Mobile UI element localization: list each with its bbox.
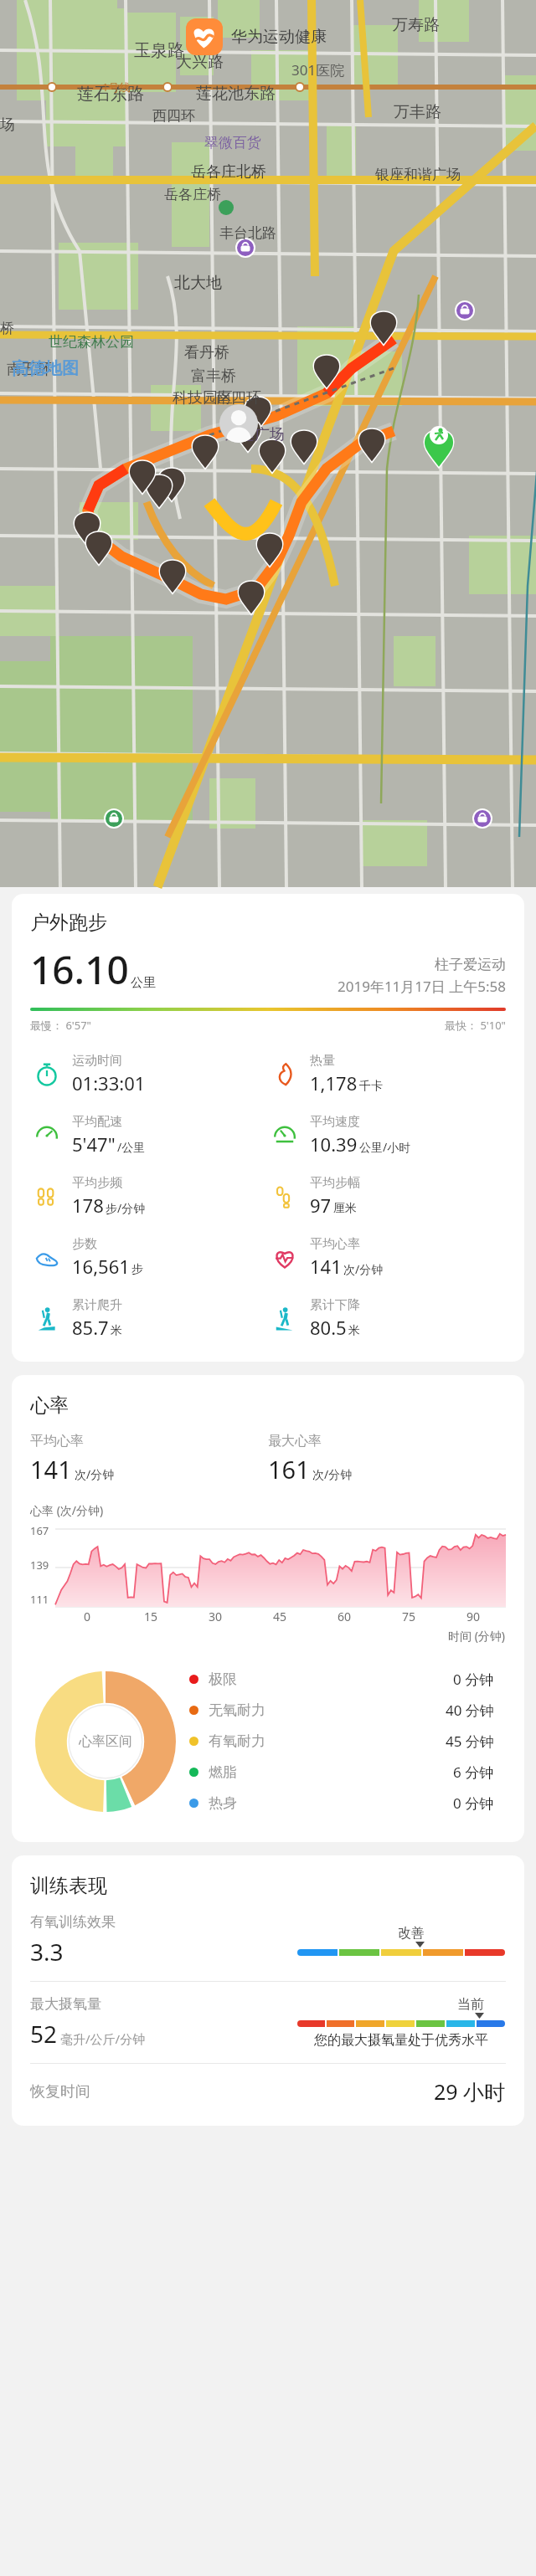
staticText: 莲石东路 xyxy=(77,84,144,105)
staticText: 45 分钟 xyxy=(446,1732,494,1751)
staticText: 40 分钟 xyxy=(446,1701,494,1720)
staticText: 南四环 xyxy=(216,388,261,408)
button[interactable]: 平均步幅 xyxy=(268,1175,506,1218)
staticText: 111 xyxy=(30,1592,49,1607)
staticText: 16,561 xyxy=(72,1254,130,1279)
button[interactable]: 有氧耐力 xyxy=(189,1726,506,1757)
staticText: 1,178 xyxy=(310,1070,358,1096)
staticText: 步/分钟 xyxy=(106,1200,146,1216)
button[interactable]: 有氧训练效果 xyxy=(30,1913,506,1968)
staticText: 岳各庄桥 xyxy=(164,186,221,203)
staticText: 热量 xyxy=(310,1053,335,1069)
staticText: 富丰桥 xyxy=(191,367,236,386)
button[interactable]: 平均心率 xyxy=(268,1236,506,1279)
staticText: 科技园区 xyxy=(173,388,233,408)
button[interactable]: 华为运动健康 xyxy=(186,18,327,55)
staticText: 米 xyxy=(111,1323,122,1338)
staticText: 万寿路 xyxy=(392,15,440,35)
staticText: 万丰路 xyxy=(394,102,441,122)
staticText: 6 分钟 xyxy=(453,1763,494,1782)
button[interactable]: 恢复时间 xyxy=(30,2077,506,2106)
staticText: 97 xyxy=(310,1193,332,1218)
button[interactable]: 热身 xyxy=(189,1788,506,1819)
staticText: 世纪森林公园 xyxy=(49,333,134,351)
button[interactable]: 最大心率 xyxy=(268,1433,506,1486)
staticText: 45 xyxy=(273,1609,287,1624)
staticText: 时间 (分钟) xyxy=(448,1628,506,1644)
staticText: 极限 xyxy=(209,1670,237,1688)
staticText: 看丹桥 xyxy=(184,343,229,362)
staticText: 301医院 xyxy=(291,60,345,80)
staticText: 心率 xyxy=(30,1393,69,1418)
staticText: 85.7 xyxy=(72,1315,109,1340)
staticText: /公里 xyxy=(117,1139,146,1155)
staticText: 平均步频 xyxy=(72,1175,122,1191)
staticText: 公里/小时 xyxy=(359,1139,411,1155)
button[interactable]: 热量 xyxy=(268,1053,506,1096)
staticText: 16.10 xyxy=(30,943,129,996)
staticText: 01:33:01 xyxy=(72,1070,146,1096)
button[interactable]: 最大摄氧量 xyxy=(30,1995,506,2050)
staticText: 厘米 xyxy=(333,1201,357,1216)
button[interactable]: 累计爬升 xyxy=(30,1297,268,1340)
staticText: 139 xyxy=(30,1557,49,1573)
staticText: 改善 xyxy=(398,1925,425,1942)
staticText: 场 xyxy=(0,115,15,135)
button[interactable]: 运动时间 xyxy=(30,1053,268,1096)
staticText: 次/分钟 xyxy=(343,1261,384,1277)
staticText: 米 xyxy=(348,1323,360,1338)
staticText: 最大心率 xyxy=(268,1433,322,1450)
button[interactable]: 燃脂 xyxy=(189,1757,506,1788)
staticText: 南五环 xyxy=(7,360,52,379)
staticText: 运动时间 xyxy=(72,1053,122,1069)
staticText: 高德地图 xyxy=(12,358,79,379)
staticText: 平均速度 xyxy=(310,1114,360,1130)
staticText: 178 xyxy=(72,1193,104,1218)
staticText: 次/分钟 xyxy=(75,1466,115,1482)
button[interactable]: 平均配速 xyxy=(30,1114,268,1157)
staticText: 银座和谐广场 xyxy=(375,166,461,183)
staticText: 3.3 xyxy=(30,1936,64,1968)
staticText: 翠微百货 xyxy=(204,134,261,151)
staticText: 平均心率 xyxy=(30,1433,84,1450)
button[interactable]: 平均速度 xyxy=(268,1114,506,1157)
staticText: 161 xyxy=(268,1453,310,1486)
staticText: 15 xyxy=(144,1609,158,1624)
staticText: 52 xyxy=(30,2018,58,2050)
staticText: 步数 xyxy=(72,1236,97,1252)
staticText: 无氧耐力 xyxy=(209,1701,265,1719)
staticText: 75 xyxy=(402,1609,416,1624)
staticText: 心率 (次/分钟) xyxy=(30,1502,104,1518)
staticText: 0 分钟 xyxy=(453,1793,494,1813)
staticText: 有氧训练效果 xyxy=(30,1913,116,1931)
staticText: 燃脂 xyxy=(209,1763,237,1781)
staticText: 141 xyxy=(310,1254,342,1279)
staticText: 桥 xyxy=(0,320,14,337)
staticText: 次/分钟 xyxy=(312,1466,353,1482)
staticText: 累计爬升 xyxy=(72,1297,122,1313)
staticText: 有氧耐力 xyxy=(209,1732,265,1750)
staticText: 毫升/公斤/分钟 xyxy=(60,2030,146,2047)
staticText: 热身 xyxy=(209,1794,237,1812)
staticText: 户外跑步 xyxy=(30,911,107,935)
staticText: 最大摄氧量 xyxy=(30,1995,101,2013)
button[interactable]: 无氧耐力 xyxy=(189,1695,506,1726)
staticText: 恢复时间 xyxy=(30,2082,90,2101)
staticText: 平均配速 xyxy=(72,1114,122,1130)
button[interactable]: 用户头像 xyxy=(219,404,258,443)
button[interactable]: 累计下降 xyxy=(268,1297,506,1340)
staticText: 玉泉路 xyxy=(134,40,184,61)
other: 华为运动健康 xyxy=(186,18,223,55)
staticText: 30 xyxy=(209,1609,223,1624)
staticText: 0 分钟 xyxy=(453,1670,494,1689)
staticText: 最快： 5'10" xyxy=(445,1018,506,1033)
staticText: 华为运动健康 xyxy=(231,27,327,47)
staticText: 岳各庄北桥 xyxy=(191,162,266,182)
staticText: 大兴路 xyxy=(176,52,224,72)
staticText: 5'47" xyxy=(72,1131,116,1157)
button[interactable]: 平均步频 xyxy=(30,1175,268,1218)
button[interactable]: 步数 xyxy=(30,1236,268,1279)
staticText: 0 xyxy=(84,1609,91,1624)
button[interactable]: 平均心率 xyxy=(30,1433,268,1486)
button[interactable]: 极限 xyxy=(189,1664,506,1695)
